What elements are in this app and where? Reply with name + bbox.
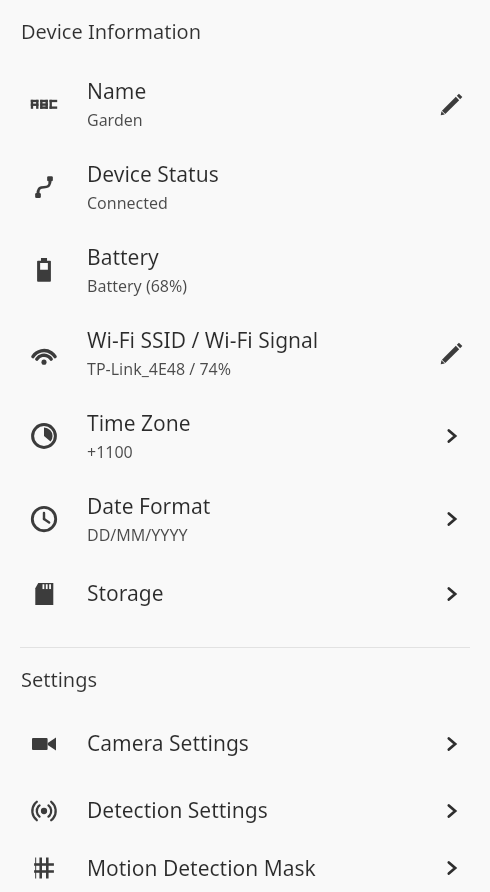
staticText: Device Status <box>87 160 219 189</box>
staticText: Battery (68%) <box>87 275 188 297</box>
staticText: Time Zone <box>87 409 191 438</box>
button[interactable]: Motion Detection Mask <box>0 844 490 892</box>
button[interactable]: Battery <box>0 228 490 311</box>
button[interactable]: Name <box>0 62 490 145</box>
staticText: Wi-Fi SSID / Wi-Fi Signal <box>87 326 319 355</box>
button[interactable]: Date Format <box>0 477 490 560</box>
staticText: Motion Detection Mask <box>87 854 316 883</box>
staticText: Name <box>87 77 147 106</box>
staticText: Settings <box>21 666 98 693</box>
button[interactable]: Time Zone <box>0 394 490 477</box>
staticText: Battery <box>87 243 159 272</box>
staticText: Camera Settings <box>87 729 249 758</box>
button[interactable]: Device Status <box>0 145 490 228</box>
staticText: Storage <box>87 579 164 608</box>
button[interactable]: Edit Wi-Fi SSID / Wi-Fi Signal <box>432 333 472 373</box>
staticText: DD/MM/YYYY <box>87 524 188 546</box>
button[interactable]: Storage <box>0 560 490 627</box>
button[interactable]: Detection Settings <box>0 777 490 844</box>
staticText: Connected <box>87 192 168 214</box>
button[interactable]: Edit Name <box>432 84 472 124</box>
button[interactable]: Camera Settings <box>0 710 490 777</box>
staticText: Device Information <box>21 18 202 45</box>
staticText: TP-Link_4E48 / 74% <box>87 358 232 380</box>
staticText: +1100 <box>87 441 133 463</box>
staticText: Garden <box>87 109 143 131</box>
staticText: Detection Settings <box>87 796 268 825</box>
button[interactable]: Wi-Fi SSID / Wi-Fi Signal <box>0 311 490 394</box>
staticText: Date Format <box>87 492 211 521</box>
